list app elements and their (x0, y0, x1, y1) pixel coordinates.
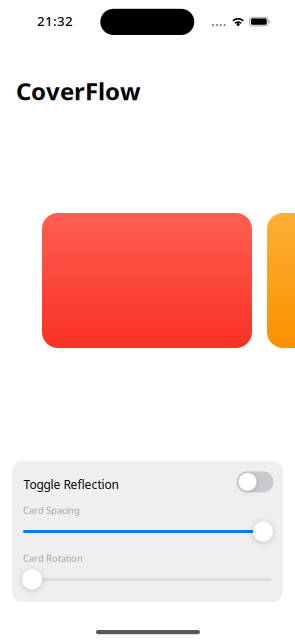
staticText: 21:32 (37, 12, 73, 30)
staticText: CoverFlow (16, 75, 141, 107)
staticText: Toggle Reflection (23, 476, 118, 492)
staticText: Card Rotation (23, 552, 83, 564)
button[interactable]: Toggle Reflection (23, 471, 272, 502)
staticText: Card Spacing (23, 504, 80, 516)
